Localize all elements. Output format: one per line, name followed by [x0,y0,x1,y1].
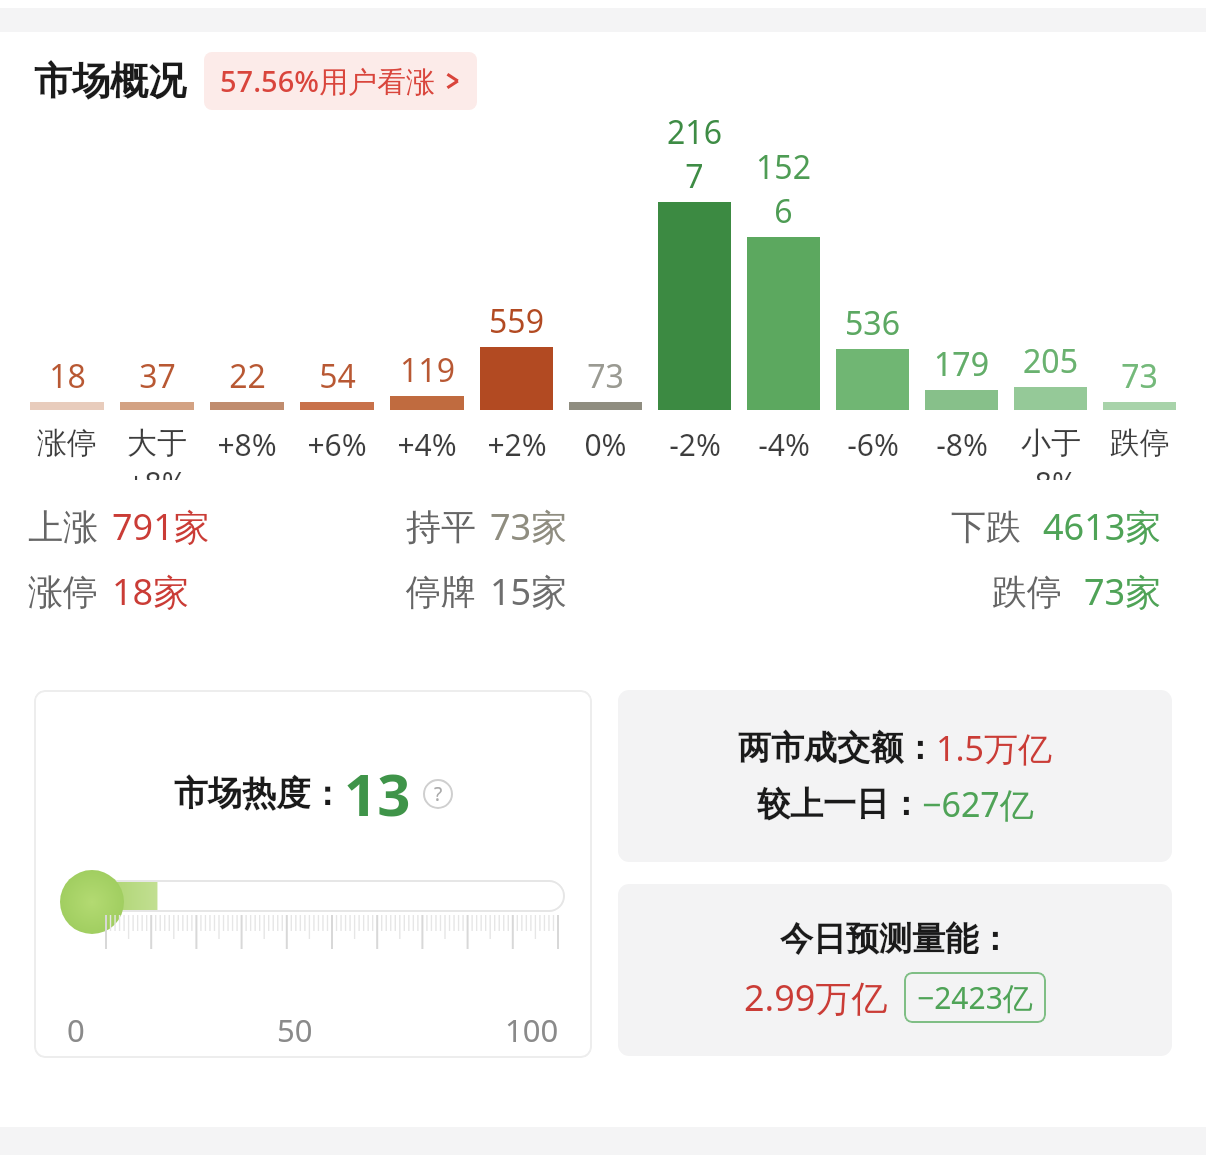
staticText: 559 [489,299,544,343]
staticText: 15家 [490,567,568,616]
staticText: 跌停 [1110,424,1170,462]
staticText: 54 [319,354,356,398]
button[interactable]: 帮助说明 [423,779,453,809]
staticText: ? [434,781,443,807]
staticText: 18 [49,354,86,398]
staticText: 100 [505,1009,559,1051]
staticText: 18家 [112,567,190,616]
button[interactable]: 今日预测量能： [618,884,1172,1056]
staticText: +6% [307,424,367,465]
staticText: 市场热度： [174,772,344,815]
staticText: -4% [758,424,810,465]
staticText: 179 [934,342,989,386]
staticText: 涨停 [37,424,97,462]
staticText: 1.5万亿 [936,725,1053,771]
staticText: 4613家 [1043,502,1162,551]
button[interactable]: 57.56%用户看涨 [204,52,477,110]
button[interactable]: 1526 [747,110,820,465]
staticText: +2% [487,424,547,465]
staticText: 1526 [747,145,820,233]
button[interactable]: 179 [925,110,998,465]
staticText: 37 [139,354,176,398]
staticText: 小于 [1021,424,1081,462]
staticText: 22 [229,354,266,398]
staticText: +8% [127,462,187,480]
staticText: 13 [344,754,411,833]
staticText: -8% [1025,462,1077,480]
button[interactable]: 559 [480,110,553,465]
staticText: -2% [669,424,721,465]
staticText: 市场概况 [34,57,186,105]
staticText: +4% [397,424,457,465]
staticText: 73 [1121,354,1158,398]
staticText: 上涨 [28,505,98,549]
staticText: 73家 [490,502,568,551]
button[interactable]: 市场热度： [34,690,592,1058]
staticText: -6% [847,424,899,465]
button[interactable]: 119 [390,110,464,465]
button[interactable]: 22 [210,110,284,465]
button[interactable]: 205 [1014,110,1087,480]
button[interactable]: 54 [300,110,374,465]
button[interactable]: 73 [569,110,642,465]
button[interactable]: 73 [1103,110,1176,462]
staticText: 2.99万亿 [744,973,888,1022]
button[interactable]: 2167 [658,110,731,465]
staticText: 73家 [1084,567,1162,616]
button[interactable]: 18 [30,110,104,462]
staticText: 持平 [406,505,476,549]
staticText: 536 [845,301,900,345]
staticText: 50 [277,1009,313,1051]
staticText: −627亿 [922,781,1034,827]
staticText: 57.56%用户看涨 [220,61,435,101]
staticText: −2423亿 [917,977,1033,1018]
staticText: 涨停 [28,570,98,614]
staticText: 较上一日： [757,783,922,825]
button[interactable]: 536 [836,110,909,465]
staticText: +8% [217,424,277,465]
staticText: 大于 [127,424,187,462]
staticText: 2167 [658,110,731,198]
staticText: 205 [1023,339,1078,383]
button[interactable]: 37 [120,110,194,480]
staticText: 跌停 [992,570,1062,614]
staticText: 119 [400,348,455,392]
staticText: 今日预测量能： [780,918,1011,960]
staticText: -8% [936,424,988,465]
staticText: 791家 [112,502,210,551]
button[interactable]: 两市成交额： [618,690,1172,862]
staticText: 两市成交额： [738,727,936,769]
staticText: 73 [587,354,624,398]
staticText: 停牌 [406,570,476,614]
staticText: 0% [584,424,627,465]
staticText: 0 [67,1009,85,1051]
staticText: 下跌 [951,505,1021,549]
